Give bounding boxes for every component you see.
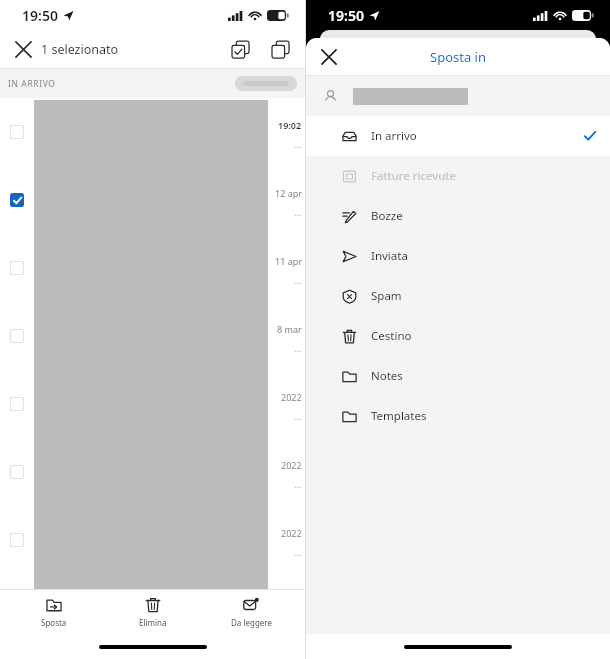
button[interactable]: Non selezionato xyxy=(10,261,24,275)
button[interactable]: Non selezionato xyxy=(0,506,305,574)
staticText: Sposta in xyxy=(430,48,486,66)
staticText: … xyxy=(294,342,302,354)
button[interactable]: Fatture ricevute xyxy=(306,156,610,196)
staticText: Elimina xyxy=(139,617,167,628)
staticText: Templates xyxy=(371,408,427,424)
button[interactable]: Filtro ricevute valide xyxy=(235,76,297,91)
button[interactable]: Bozze xyxy=(306,196,610,236)
button[interactable]: Non selezionato xyxy=(10,397,24,411)
staticText: … xyxy=(294,546,302,558)
button[interactable]: Sposta xyxy=(9,590,99,634)
button[interactable]: Non selezionato xyxy=(10,125,24,139)
button[interactable]: Non selezionato xyxy=(0,438,305,506)
staticText: … xyxy=(294,274,302,286)
button[interactable]: Non selezionato xyxy=(0,234,305,302)
staticText: … xyxy=(294,410,302,422)
button[interactable]: Non selezionato xyxy=(0,302,305,370)
button[interactable] xyxy=(306,76,610,116)
button[interactable]: Non selezionato xyxy=(0,370,305,438)
button[interactable]: Non selezionato xyxy=(10,465,24,479)
button[interactable]: Selezionato xyxy=(0,166,305,234)
staticText: Sposta xyxy=(41,617,67,628)
button[interactable]: Templates xyxy=(306,396,610,436)
button[interactable]: Spam xyxy=(306,276,610,316)
button[interactable]: Elimina xyxy=(108,590,198,634)
staticText: … xyxy=(294,478,302,490)
staticText: IN ARRIVO xyxy=(8,78,56,90)
staticText: 11 apr xyxy=(275,255,302,267)
staticText: … xyxy=(294,138,302,150)
button[interactable]: Seleziona tutto xyxy=(225,34,255,64)
staticText: 2022 xyxy=(281,391,302,403)
button[interactable]: Notes xyxy=(306,356,610,396)
staticText: Notes xyxy=(371,368,403,384)
staticText: Inviata xyxy=(371,248,408,264)
button[interactable]: Non selezionato xyxy=(10,329,24,343)
staticText: 8 mar xyxy=(277,323,302,335)
staticText: 12 apr xyxy=(275,187,302,199)
button[interactable]: Da leggere xyxy=(206,590,296,634)
staticText: 19:50 xyxy=(328,6,364,25)
button[interactable]: Inviata xyxy=(306,236,610,276)
staticText: In arrivo xyxy=(371,128,417,144)
staticText: 19:02 xyxy=(278,119,302,131)
button[interactable]: Non selezionato xyxy=(10,533,24,547)
staticText: Spam xyxy=(371,288,402,304)
staticText: Cestino xyxy=(371,328,412,344)
staticText: Fatture ricevute xyxy=(371,168,456,184)
staticText: 2022 xyxy=(281,459,302,471)
button[interactable]: Selezionato xyxy=(10,193,24,207)
button[interactable]: Chiudi selezione xyxy=(8,34,38,64)
staticText: Bozze xyxy=(371,208,403,224)
staticText: Da leggere xyxy=(231,617,272,628)
button[interactable]: Non selezionato xyxy=(0,98,305,166)
staticText: 19:50 xyxy=(22,6,58,25)
staticText: 2022 xyxy=(281,527,302,539)
staticText: 1 selezionato xyxy=(41,41,119,58)
button[interactable]: In arrivo xyxy=(306,116,610,156)
staticText: … xyxy=(294,206,302,218)
button[interactable]: Deseleziona xyxy=(265,34,295,64)
button[interactable]: Chiudi xyxy=(314,42,344,72)
button[interactable]: Cestino xyxy=(306,316,610,356)
